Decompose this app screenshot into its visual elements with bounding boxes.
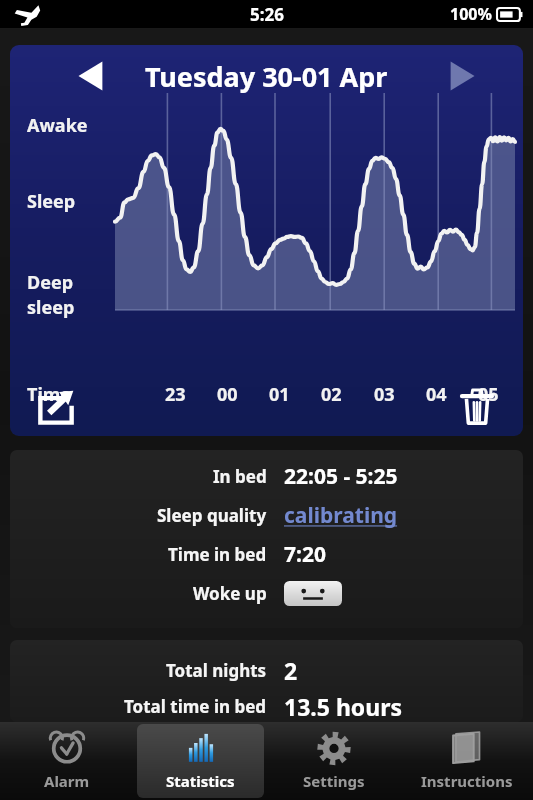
staticText: 02: [321, 382, 342, 407]
staticText: sleep: [27, 295, 75, 320]
staticText: In bed: [213, 465, 267, 488]
staticText: 5:26: [250, 3, 284, 26]
button[interactable]: Alarm: [3, 724, 131, 798]
staticText: Instructions: [421, 771, 513, 791]
staticText: 00: [217, 382, 238, 407]
staticText: Alarm: [44, 771, 90, 791]
staticText: 04: [426, 382, 447, 407]
button[interactable]: Statistics: [137, 724, 264, 798]
staticText: Sleep quality: [157, 504, 267, 527]
staticText: 23: [165, 382, 186, 407]
staticText: 13.5 hours: [284, 691, 403, 722]
staticText: 7:20: [284, 540, 326, 569]
button[interactable]: Next day: [441, 56, 481, 96]
staticText: Sleep: [27, 189, 76, 214]
staticText: 05: [478, 382, 499, 407]
staticText: Total nights: [166, 659, 267, 682]
button[interactable]: Settings: [270, 724, 397, 798]
staticText: Statistics: [166, 771, 235, 791]
staticText: Time in bed: [168, 543, 267, 566]
button[interactable]: Share: [32, 383, 80, 431]
staticText: 03: [374, 382, 395, 407]
button[interactable]: Previous day: [72, 56, 112, 96]
staticText: Total time in bed: [124, 695, 267, 718]
other: Airplane mode: [16, 3, 38, 25]
staticText: Deep: [27, 270, 74, 295]
staticText: Tuesday 30-01 Apr: [145, 58, 388, 95]
staticText: 100%: [450, 3, 492, 25]
staticText: Settings: [303, 771, 365, 791]
staticText: Awake: [27, 113, 88, 138]
button[interactable]: Instructions: [403, 724, 530, 798]
staticText: 01: [269, 382, 290, 407]
staticText: Woke up: [193, 582, 267, 605]
button[interactable]: Delete: [453, 383, 501, 431]
staticText: Time: [27, 382, 72, 407]
other: Battery full: [497, 8, 523, 21]
staticText: calibrating: [284, 501, 398, 530]
staticText: 2: [284, 655, 298, 686]
staticText: 22:05 - 5:25: [284, 462, 398, 491]
